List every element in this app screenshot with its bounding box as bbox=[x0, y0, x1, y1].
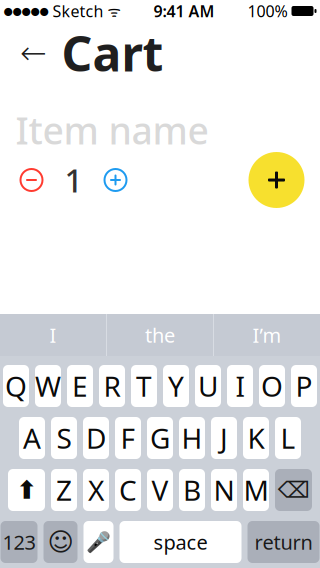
staticText: A bbox=[23, 419, 41, 457]
staticText: M bbox=[243, 471, 268, 509]
button[interactable]: F bbox=[115, 417, 141, 459]
staticText: ⌫ bbox=[277, 477, 309, 503]
staticText: Sketch bbox=[48, 0, 103, 22]
button[interactable]: Numbers bbox=[0, 521, 37, 563]
staticText: N bbox=[213, 471, 234, 509]
button[interactable]: Z bbox=[51, 469, 77, 511]
staticText: W bbox=[35, 367, 61, 405]
button[interactable]: C bbox=[115, 469, 141, 511]
staticText: return bbox=[254, 529, 312, 555]
button[interactable]: J bbox=[211, 417, 237, 459]
staticText: ⬆ bbox=[16, 476, 37, 504]
button[interactable]: I bbox=[227, 365, 253, 407]
button[interactable]: the bbox=[107, 314, 213, 356]
staticText: K bbox=[247, 419, 264, 457]
button[interactable]: S bbox=[51, 417, 77, 459]
staticText: Cart bbox=[61, 21, 163, 85]
staticText: D bbox=[86, 419, 106, 457]
staticText: 123 bbox=[2, 529, 35, 555]
button[interactable]: A bbox=[19, 417, 45, 459]
staticText: V bbox=[151, 471, 168, 509]
button[interactable]: Dictation bbox=[83, 521, 113, 563]
button[interactable]: X bbox=[83, 469, 109, 511]
staticText: ●●●●● bbox=[3, 5, 48, 17]
button[interactable]: I bbox=[0, 314, 106, 356]
button[interactable]: I’m bbox=[214, 314, 320, 356]
button[interactable]: W bbox=[35, 365, 61, 407]
button[interactable]: L bbox=[275, 417, 301, 459]
staticText: 1 bbox=[64, 159, 82, 201]
staticText: Z bbox=[56, 471, 72, 509]
staticText: J bbox=[220, 419, 228, 457]
staticText: ☺ bbox=[47, 528, 73, 556]
staticText: B bbox=[183, 471, 201, 509]
staticText: ᯤ bbox=[103, 1, 120, 21]
staticText: Q bbox=[5, 367, 27, 405]
staticText: X bbox=[88, 471, 104, 509]
staticText: I bbox=[235, 367, 244, 405]
staticText: Y bbox=[168, 367, 184, 405]
button[interactable]: B bbox=[179, 469, 205, 511]
button[interactable]: return bbox=[247, 521, 319, 563]
staticText: O bbox=[261, 367, 283, 405]
staticText: P bbox=[295, 367, 312, 405]
staticText: C bbox=[119, 471, 137, 509]
staticText: space bbox=[153, 529, 207, 555]
button[interactable]: Increase quantity bbox=[93, 158, 137, 202]
button[interactable]: Y bbox=[163, 365, 189, 407]
button[interactable]: N bbox=[211, 469, 237, 511]
button[interactable]: M bbox=[243, 469, 269, 511]
staticText: F bbox=[120, 419, 135, 457]
staticText: Item name bbox=[15, 105, 208, 155]
staticText: E bbox=[72, 367, 88, 405]
button[interactable]: E bbox=[67, 365, 93, 407]
button[interactable]: K bbox=[243, 417, 269, 459]
button[interactable]: Add item bbox=[246, 150, 306, 210]
button[interactable]: D bbox=[83, 417, 109, 459]
button[interactable]: Shift bbox=[8, 469, 45, 511]
button[interactable]: Back bbox=[19, 35, 47, 71]
staticText: G bbox=[150, 419, 170, 457]
button[interactable]: Decrease quantity bbox=[9, 158, 53, 202]
button[interactable]: H bbox=[179, 417, 205, 459]
button[interactable]: P bbox=[291, 365, 317, 407]
button[interactable]: V bbox=[147, 469, 173, 511]
staticText: 9:41 AM bbox=[153, 0, 214, 22]
button[interactable]: Emoji bbox=[43, 521, 77, 563]
button[interactable]: Delete bbox=[275, 469, 312, 511]
button[interactable]: R bbox=[99, 365, 125, 407]
staticText: T bbox=[136, 367, 152, 405]
staticText: I bbox=[49, 322, 56, 348]
staticText: the bbox=[145, 322, 175, 348]
staticText: L bbox=[280, 419, 295, 457]
button[interactable]: O bbox=[259, 365, 285, 407]
button[interactable]: U bbox=[195, 365, 221, 407]
button[interactable]: G bbox=[147, 417, 173, 459]
staticText: R bbox=[103, 367, 120, 405]
staticText: S bbox=[56, 419, 71, 457]
staticText: 100% bbox=[247, 0, 287, 22]
button[interactable]: T bbox=[131, 365, 157, 407]
staticText: I’m bbox=[252, 322, 281, 348]
staticText: ← bbox=[20, 35, 47, 71]
button[interactable]: Q bbox=[3, 365, 29, 407]
button[interactable]: space bbox=[119, 521, 241, 563]
staticText: H bbox=[181, 419, 202, 457]
staticText: U bbox=[198, 367, 218, 405]
staticText: 🎤 bbox=[86, 531, 111, 553]
